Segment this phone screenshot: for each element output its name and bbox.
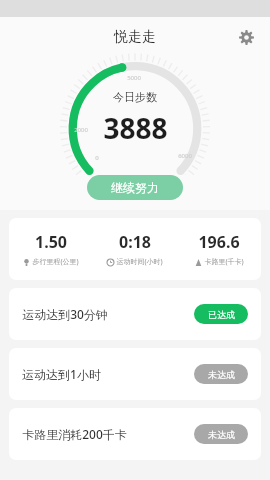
staticText: 继续努力 bbox=[111, 180, 159, 195]
staticText: 未达成 bbox=[208, 429, 235, 440]
staticText: 步行里程(公里) bbox=[32, 257, 79, 267]
button[interactable]: 1.50 bbox=[9, 218, 261, 280]
staticText: 运动达到1小时 bbox=[22, 366, 101, 382]
button[interactable]: 运动达到1小时 bbox=[9, 348, 261, 400]
staticText: 未达成 bbox=[208, 369, 235, 380]
staticText: 运动达到30分钟 bbox=[22, 306, 108, 322]
staticText: 运动时间(小时) bbox=[116, 257, 163, 267]
staticText: 3888 bbox=[103, 109, 168, 147]
staticText: 1.50 bbox=[35, 231, 67, 253]
button[interactable]: Settings bbox=[232, 23, 260, 51]
staticText: 196.6 bbox=[198, 231, 240, 253]
staticText: 卡路里消耗200千卡 bbox=[22, 426, 127, 442]
staticText: 今日步数 bbox=[113, 90, 157, 104]
staticText: 卡路里(千卡) bbox=[204, 257, 244, 267]
staticText: 0:18 bbox=[119, 231, 151, 253]
button[interactable]: 卡路里消耗200千卡 bbox=[9, 408, 261, 460]
staticText: 已达成 bbox=[208, 309, 235, 320]
button[interactable]: 运动达到30分钟 bbox=[9, 288, 261, 340]
staticText: 悦走走 bbox=[114, 28, 156, 46]
staticText: 0 bbox=[95, 154, 99, 162]
button[interactable]: 继续努力 bbox=[87, 175, 183, 200]
staticText: 5000 bbox=[127, 74, 141, 82]
staticText: 6000 bbox=[178, 152, 192, 160]
staticText: 2000 bbox=[74, 126, 88, 134]
